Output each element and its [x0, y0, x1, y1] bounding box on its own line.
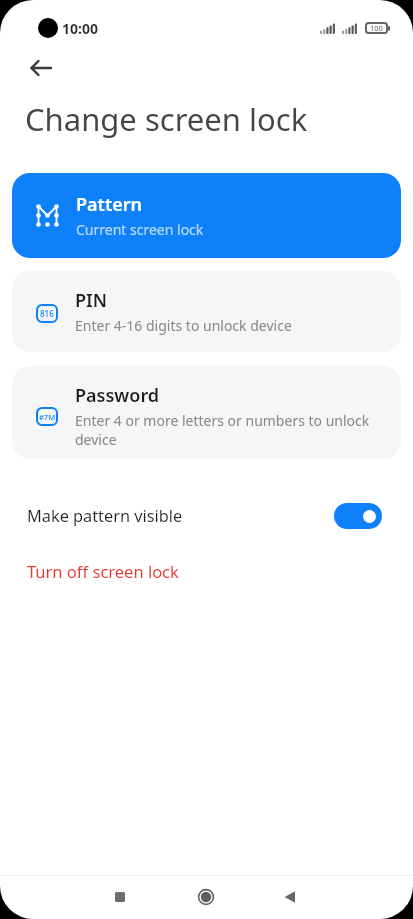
button[interactable]: Turn off screen lock: [27, 560, 179, 582]
staticText: Current screen lock: [76, 220, 204, 239]
button[interactable]: [334, 503, 382, 529]
button[interactable]: Pattern: [12, 173, 401, 258]
staticText: Enter 4 or more letters or numbers to un…: [75, 411, 380, 449]
staticText: Make pattern visible: [27, 505, 183, 527]
staticText: 816: [40, 308, 54, 319]
button[interactable]: Make pattern visible: [27, 503, 382, 529]
button[interactable]: [27, 54, 55, 82]
button[interactable]: [98, 875, 142, 919]
staticText: PIN: [75, 288, 108, 313]
button[interactable]: 816: [12, 271, 401, 352]
staticText: Pattern: [76, 192, 143, 217]
staticText: 10:00: [62, 19, 98, 38]
button[interactable]: #7M: [12, 366, 401, 459]
staticText: Change screen lock: [25, 98, 308, 140]
staticText: 100: [370, 23, 383, 33]
staticText: #7M: [39, 412, 56, 422]
button[interactable]: [268, 875, 312, 919]
staticText: Enter 4-16 digits to unlock device: [75, 316, 292, 335]
staticText: Password: [75, 383, 160, 408]
button[interactable]: [184, 875, 228, 919]
